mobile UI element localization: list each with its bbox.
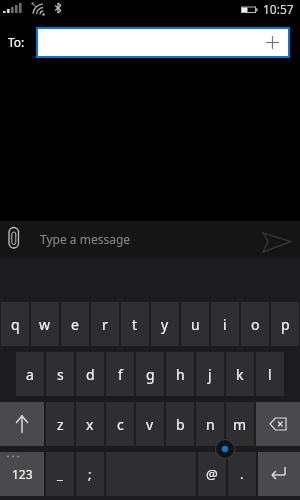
staticText: @ [206, 465, 218, 483]
button[interactable] [36, 27, 290, 58]
staticText: k [236, 365, 244, 384]
staticText: w [39, 315, 51, 334]
button[interactable]: n [196, 402, 224, 446]
button[interactable]: y [151, 302, 179, 346]
button[interactable]: l [256, 352, 284, 396]
button[interactable]: a [16, 352, 44, 396]
staticText: y [161, 315, 169, 334]
staticText: z [57, 415, 64, 434]
button[interactable]: Type a message [0, 221, 300, 258]
button[interactable]: @ [198, 452, 226, 496]
button[interactable]: j [196, 352, 224, 396]
staticText: l [268, 365, 272, 384]
button[interactable]: ; [76, 452, 104, 496]
button[interactable]: w [31, 302, 59, 346]
staticText: h [176, 365, 185, 384]
button[interactable]: v [136, 402, 164, 446]
button[interactable]: m [226, 402, 254, 446]
staticText: a [26, 365, 34, 384]
button[interactable]: d [76, 352, 104, 396]
button[interactable] [256, 402, 300, 446]
button[interactable]: x [76, 402, 104, 446]
staticText: m [233, 415, 247, 434]
staticText: n [206, 415, 215, 434]
button[interactable]: i [211, 302, 239, 346]
staticText: x [86, 415, 94, 434]
button[interactable]: u [181, 302, 209, 346]
button[interactable]: g [136, 352, 164, 396]
button[interactable]: p [271, 302, 299, 346]
staticText: g [146, 365, 155, 384]
button[interactable]: k [226, 352, 254, 396]
staticText: Type a message [40, 231, 131, 247]
button[interactable]: q [1, 302, 29, 346]
staticText: f [118, 365, 123, 384]
staticText: r [102, 315, 108, 334]
button[interactable]: z [46, 402, 74, 446]
button[interactable]: h [166, 352, 194, 396]
button[interactable]: c [106, 402, 134, 446]
button[interactable]: _ [46, 452, 74, 496]
staticText: _ [57, 465, 63, 483]
staticText: o [251, 315, 260, 334]
button[interactable]: 123 [0, 452, 44, 496]
staticText: u [191, 315, 200, 334]
staticText: e [71, 315, 79, 334]
staticText: 123 [12, 466, 33, 482]
button[interactable]: r [91, 302, 119, 346]
button[interactable]: e [61, 302, 89, 346]
button[interactable] [0, 402, 44, 446]
staticText: ; [88, 465, 92, 483]
button[interactable]: t [121, 302, 149, 346]
staticText: j [208, 365, 212, 384]
button[interactable]: . [228, 452, 256, 496]
staticText: p [281, 315, 290, 334]
button[interactable] [258, 452, 300, 496]
staticText: v [146, 415, 154, 434]
button[interactable]: o [241, 302, 269, 346]
staticText: d [86, 365, 95, 384]
button[interactable]: f [106, 352, 134, 396]
staticText: q [11, 315, 20, 334]
staticText: t [132, 315, 138, 334]
button[interactable]: b [166, 402, 194, 446]
staticText: i [223, 315, 227, 334]
button[interactable]: s [46, 352, 74, 396]
staticText: c [117, 415, 124, 434]
staticText: s [57, 365, 64, 384]
staticText: To: [8, 34, 25, 50]
staticText: . [240, 465, 244, 483]
staticText: b [176, 415, 185, 434]
staticText: 10:57 [263, 1, 294, 17]
